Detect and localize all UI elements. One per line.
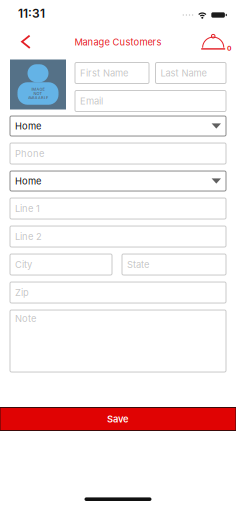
staticText: Line 2 — [15, 231, 42, 242]
button[interactable]: Choose customer photo — [10, 59, 66, 109]
button[interactable]: Save — [0, 407, 236, 430]
staticText: City — [15, 259, 32, 270]
button[interactable]: Home — [10, 171, 226, 191]
staticText: Home — [15, 120, 41, 131]
button[interactable]: Orders — [200, 33, 236, 50]
button[interactable]: First Name — [75, 62, 149, 83]
staticText: AVAILABLE — [28, 95, 48, 100]
button[interactable]: Note — [10, 310, 226, 372]
staticText: Manage Customers — [74, 36, 161, 47]
staticText: Save — [107, 413, 129, 424]
staticText: First Name — [80, 67, 128, 78]
staticText: IMAGE — [31, 87, 44, 92]
button[interactable]: Home — [10, 116, 226, 136]
button[interactable]: City — [10, 254, 112, 275]
staticText: Home — [15, 175, 41, 186]
staticText: State — [127, 259, 149, 270]
button[interactable]: Back — [0, 35, 37, 49]
button[interactable]: Email — [75, 90, 226, 111]
staticText: 0 — [227, 44, 231, 52]
staticText: Zip — [15, 287, 29, 298]
button[interactable]: State — [122, 254, 226, 275]
staticText: Line 1 — [15, 203, 40, 214]
staticText: 11:31 — [18, 6, 45, 21]
button[interactable]: Line 2 — [10, 226, 226, 247]
button[interactable]: Last Name — [155, 62, 226, 83]
staticText: NOT — [33, 91, 42, 96]
button[interactable]: Zip — [10, 282, 226, 303]
button[interactable]: Phone — [10, 143, 226, 164]
staticText: Last Name — [160, 67, 206, 78]
staticText: Email — [80, 95, 103, 106]
button[interactable]: Line 1 — [10, 198, 226, 219]
staticText: Note — [15, 313, 36, 324]
staticText: Phone — [15, 148, 44, 159]
